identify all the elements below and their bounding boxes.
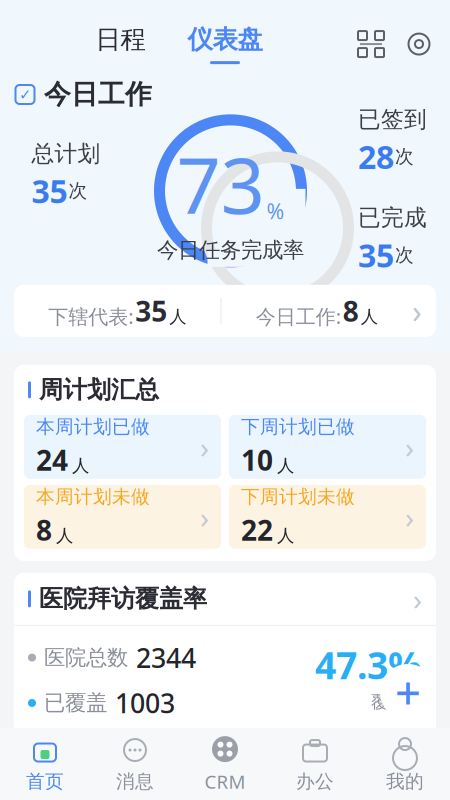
- staticText: 次: [395, 145, 414, 168]
- staticText: 我的: [386, 770, 424, 793]
- staticText: 已完成: [358, 204, 427, 232]
- staticText: 35: [358, 234, 394, 276]
- staticText: 已覆盖: [44, 690, 107, 716]
- staticText: ›: [200, 497, 209, 536]
- button[interactable]: 日程: [95, 24, 145, 64]
- staticText: 24: [36, 441, 68, 478]
- staticText: CRM: [204, 769, 245, 794]
- staticText: 1003: [115, 685, 175, 721]
- button[interactable]: 首页: [0, 728, 90, 800]
- button[interactable]: 消息: [90, 728, 180, 800]
- staticText: %: [266, 197, 284, 225]
- staticText: 人: [56, 525, 73, 546]
- staticText: 人: [277, 525, 294, 546]
- button[interactable]: 下辖代表:: [14, 285, 436, 337]
- button[interactable]: 新建: [380, 664, 436, 720]
- staticText: 今日任务完成率: [157, 237, 304, 263]
- staticText: 35: [135, 292, 167, 329]
- staticText: 医院拜访覆盖率: [39, 584, 207, 614]
- staticText: 下周计划已做: [241, 415, 355, 438]
- button[interactable]: CRM: [180, 728, 270, 800]
- staticText: 消息: [116, 770, 154, 793]
- button[interactable]: 下周计划未做: [229, 485, 426, 549]
- staticText: 本周计划未做: [36, 485, 150, 508]
- staticText: 47.3%: [315, 640, 422, 689]
- staticText: ›: [405, 427, 414, 466]
- staticText: 覆盖率: [371, 691, 422, 713]
- staticText: 人: [169, 306, 186, 327]
- staticText: 人: [277, 455, 294, 476]
- button[interactable]: 本周计划未做: [24, 485, 221, 549]
- staticText: 10: [241, 441, 273, 478]
- staticText: 2344: [136, 640, 196, 675]
- staticText: 今日工作: [44, 78, 152, 111]
- staticText: ›: [405, 497, 414, 536]
- button[interactable]: 扫一扫: [358, 31, 384, 57]
- staticText: 今日工作:: [256, 303, 341, 329]
- staticText: 总计划: [31, 140, 100, 167]
- staticText: 人: [361, 306, 378, 327]
- staticText: 医院总数: [44, 644, 128, 671]
- staticText: +: [395, 662, 421, 722]
- staticText: 仪表盘: [187, 24, 262, 55]
- staticText: 次: [395, 243, 414, 266]
- button[interactable]: 设置: [406, 31, 432, 57]
- staticText: 首页: [26, 770, 64, 793]
- staticText: 28: [358, 135, 394, 178]
- staticText: 35: [31, 169, 67, 212]
- button[interactable]: 医院拜访覆盖率: [14, 573, 436, 625]
- staticText: 22: [241, 511, 273, 548]
- staticText: 本周计划已做: [36, 415, 150, 438]
- button[interactable]: 我的: [360, 728, 450, 800]
- staticText: 8: [343, 292, 359, 329]
- staticText: 办公: [296, 770, 334, 793]
- button[interactable]: 仪表盘: [187, 24, 262, 64]
- button[interactable]: 下周计划已做: [229, 415, 426, 479]
- staticText: 次: [68, 179, 87, 202]
- staticText: ›: [412, 290, 422, 332]
- button[interactable]: 办公: [270, 728, 360, 800]
- staticText: ›: [413, 579, 422, 618]
- staticText: 周计划汇总: [39, 375, 159, 405]
- staticText: 73: [176, 132, 264, 235]
- staticText: 人: [72, 455, 89, 476]
- button[interactable]: 本周计划已做: [24, 415, 221, 479]
- staticText: 8: [36, 511, 52, 548]
- staticText: 下周计划未做: [241, 485, 355, 508]
- staticText: ›: [200, 427, 209, 466]
- staticText: ✓: [19, 86, 31, 103]
- staticText: 下辖代表:: [48, 303, 133, 329]
- staticText: 日程: [95, 24, 145, 55]
- staticText: 已签到: [358, 105, 427, 133]
